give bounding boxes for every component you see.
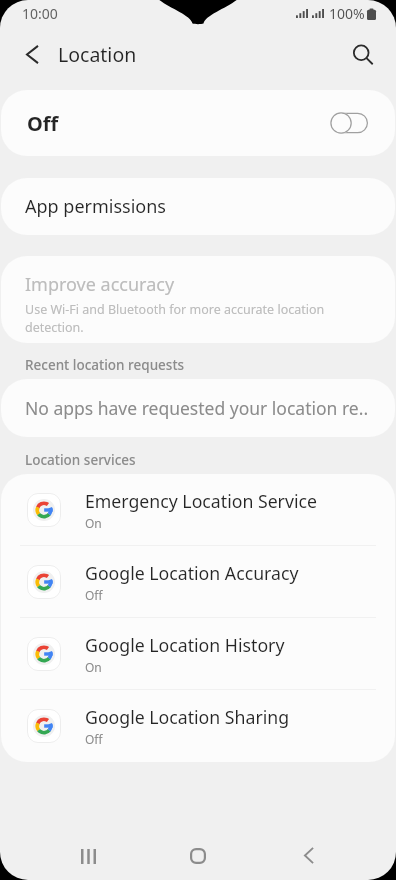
- button[interactable]: Google Location Sharing: [1, 690, 395, 761]
- staticText: 10:00: [22, 4, 58, 23]
- staticText: Location services: [25, 451, 136, 469]
- button[interactable]: Recent apps: [46, 824, 130, 880]
- staticText: Location: [58, 41, 137, 68]
- staticText: Google Location Sharing: [85, 705, 290, 729]
- button[interactable]: Home: [156, 824, 240, 880]
- staticText: Off: [85, 731, 103, 747]
- button[interactable]: Google Location History: [1, 618, 395, 689]
- button[interactable]: Google Location Accuracy: [1, 546, 395, 617]
- staticText: Off: [85, 587, 103, 603]
- staticText: Google Location Accuracy: [85, 561, 299, 585]
- button[interactable]: App permissions: [1, 178, 395, 235]
- button[interactable]: Back: [267, 824, 351, 880]
- staticText: Off: [27, 110, 59, 137]
- button[interactable]: Navigate up: [0, 27, 52, 81]
- staticText: On: [85, 659, 102, 675]
- staticText: Improve accuracy: [25, 272, 175, 297]
- staticText: On: [85, 515, 102, 531]
- staticText: Emergency Location Service: [85, 489, 317, 513]
- staticText: Google Location History: [85, 633, 285, 657]
- staticText: App permissions: [25, 194, 166, 219]
- button[interactable]: Off: [1, 90, 395, 156]
- button[interactable]: Emergency Location Service: [1, 474, 395, 545]
- staticText: 100%: [329, 4, 365, 23]
- staticText: Recent location requests: [25, 356, 185, 374]
- staticText: Use Wi-Fi and Bluetooth for more accurat…: [25, 301, 369, 336]
- button[interactable]: Search: [342, 27, 396, 81]
- staticText: No apps have requested your location re.…: [25, 396, 369, 420]
